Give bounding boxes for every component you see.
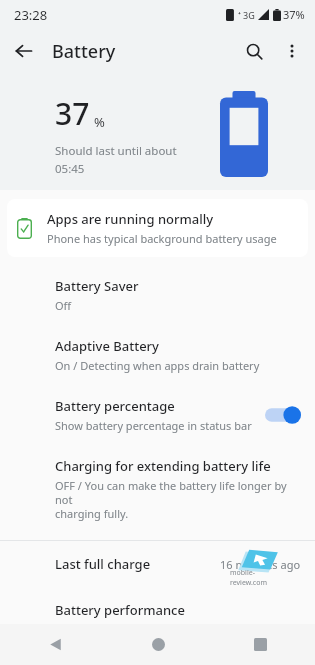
staticText: Apps are running normally	[47, 210, 214, 228]
staticText: Battery performance	[55, 601, 185, 619]
staticText: mobile-review.com	[230, 568, 290, 588]
button[interactable]: Back	[6, 33, 42, 69]
staticText: 3G	[243, 9, 255, 21]
staticText: Show battery percentage in status bar	[55, 418, 252, 433]
staticText: 16 minutes ago	[220, 557, 301, 572]
staticText: Should last until about	[55, 143, 177, 159]
staticText: Battery Saver	[55, 277, 139, 295]
staticText: Battery percentage	[55, 397, 175, 415]
button[interactable]: Apps are running normally	[7, 199, 308, 257]
staticText: Battery	[52, 39, 116, 64]
button[interactable]: Battery Saver	[0, 265, 315, 325]
staticText: OFF / You can make the battery life long…	[55, 478, 299, 521]
staticText: 05:45	[55, 161, 85, 177]
button[interactable]: Search	[235, 32, 273, 70]
staticText: On / Detecting when apps drain battery	[55, 358, 260, 373]
staticText: Screen usage since full charge	[55, 647, 243, 651]
button[interactable]: Last full charge	[0, 541, 315, 587]
button[interactable]: Recents	[239, 624, 281, 665]
staticText: Charging for extending battery life	[55, 457, 271, 475]
button[interactable]: Battery performance	[0, 587, 315, 633]
button[interactable]: Screen usage since full charge	[0, 633, 315, 665]
staticText: Off	[55, 298, 72, 313]
staticText: Phone has typical background battery usa…	[47, 231, 277, 246]
staticText: ⁺	[238, 9, 241, 20]
staticText: 37%	[283, 7, 305, 22]
button[interactable]: Adaptive Battery	[0, 325, 315, 385]
button[interactable]: More options	[273, 32, 311, 70]
button[interactable]: Charging for extending battery life	[0, 445, 315, 533]
staticText: Adaptive Battery	[55, 337, 159, 355]
button[interactable]: Home	[137, 624, 179, 665]
staticText: 37	[55, 93, 90, 134]
button[interactable]: Battery percentage	[0, 385, 315, 445]
staticText: 1 hr, 14 min	[243, 647, 301, 651]
staticText: 23:28	[14, 6, 48, 24]
button[interactable]: Back	[34, 624, 76, 665]
staticText: Last full charge	[55, 555, 151, 573]
staticText: %	[94, 113, 105, 131]
button[interactable]: Battery percentage toggle	[265, 404, 301, 426]
